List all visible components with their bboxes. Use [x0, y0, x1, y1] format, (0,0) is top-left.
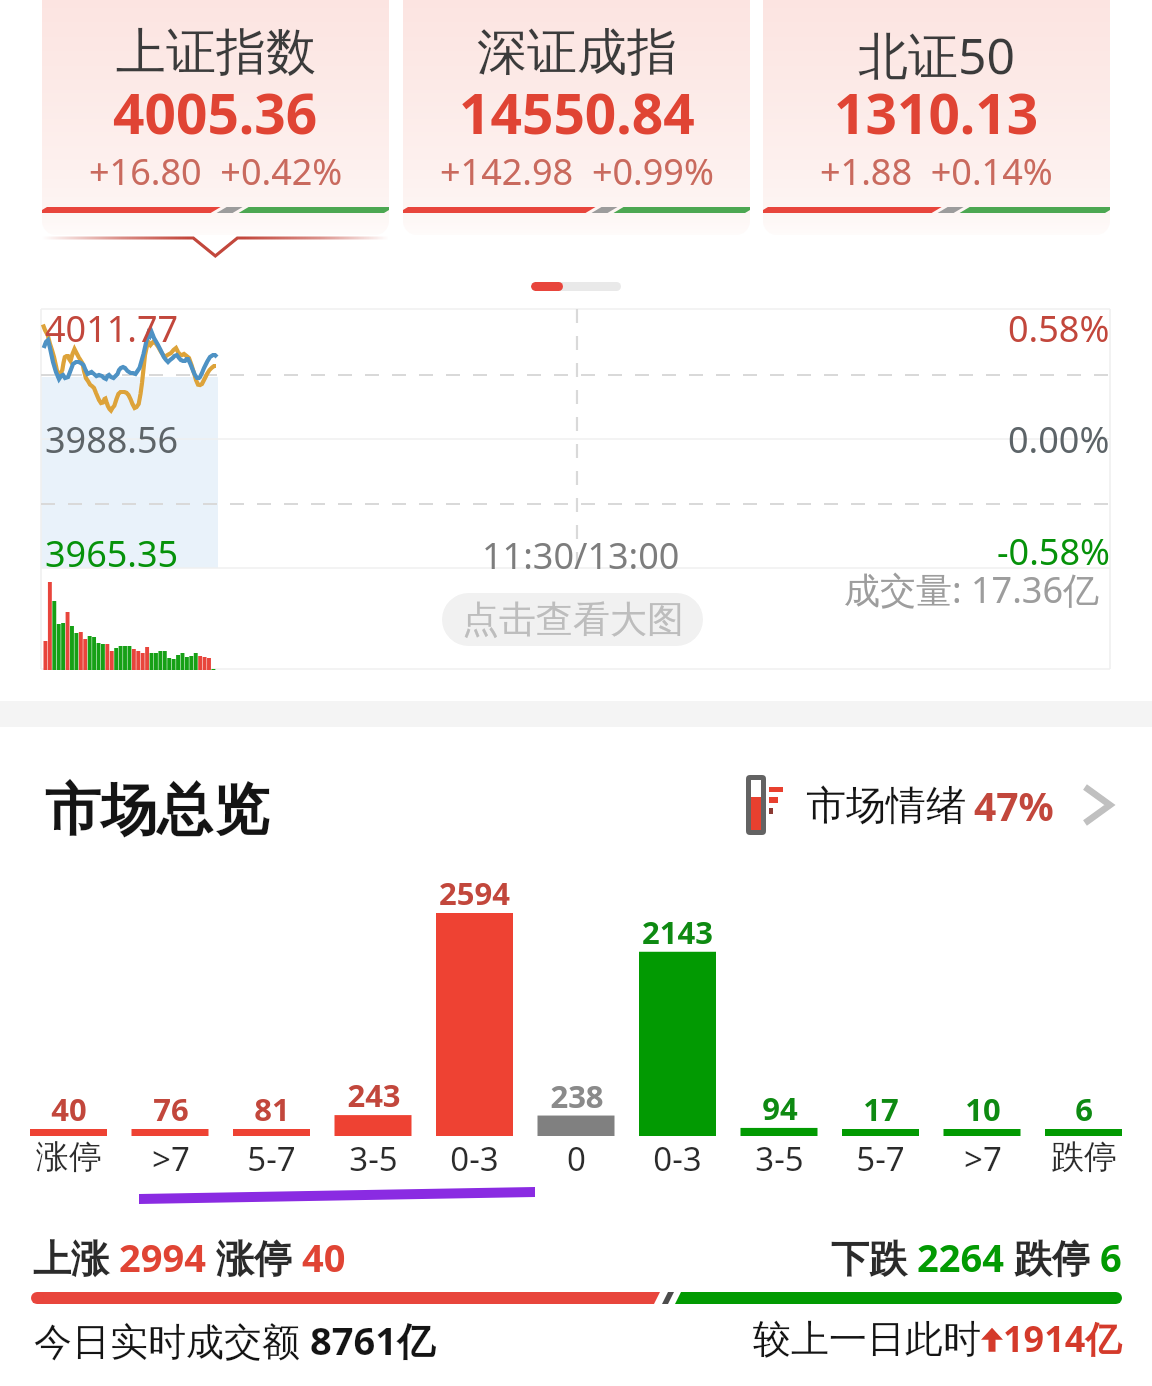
staticText: 3965.35	[45, 529, 179, 578]
staticText: 6	[1075, 1088, 1093, 1130]
staticText: 81	[254, 1088, 290, 1130]
staticText: 1914亿	[1003, 1314, 1122, 1363]
staticText: 76	[153, 1088, 189, 1130]
staticText: 8761亿	[310, 1314, 435, 1366]
button[interactable]: 3-5 94	[729, 880, 830, 1180]
staticText: 40	[51, 1088, 87, 1130]
button[interactable]: 上证指数分时图	[41, 309, 1110, 669]
staticText: 0-3	[653, 1136, 702, 1181]
staticText: 深证成指	[477, 21, 677, 84]
staticText: +142.98 +0.99%	[440, 147, 714, 196]
staticText: 10	[965, 1088, 1001, 1130]
staticText: 点击查看大图	[462, 596, 684, 643]
button[interactable]: 5-7 17	[830, 880, 931, 1180]
staticText: 94	[762, 1087, 798, 1129]
button[interactable]: 0-3 2594	[424, 880, 525, 1180]
staticText: 较上一日此时	[753, 1315, 981, 1363]
staticText: 0	[567, 1136, 586, 1181]
staticText: 上证指数	[116, 21, 316, 84]
staticText: 市场总览	[45, 775, 269, 846]
staticText: 5-7	[856, 1136, 905, 1181]
button[interactable]: 3-5 243	[323, 880, 424, 1180]
staticText: 0.00%	[1008, 415, 1110, 464]
staticText: >7	[152, 1136, 190, 1181]
staticText: 4011.77	[45, 304, 179, 353]
button[interactable]: 涨停 40	[18, 880, 119, 1180]
staticText: 0.58%	[1008, 304, 1110, 353]
staticText: 3-5	[755, 1136, 804, 1181]
staticText: 市场情绪	[806, 780, 966, 830]
button[interactable]: 市场情绪	[746, 771, 1112, 839]
staticText: 成交量: 17.36亿	[844, 565, 1100, 614]
staticText: +16.80 +0.42%	[89, 147, 343, 196]
staticText: 下跌	[831, 1231, 917, 1283]
button[interactable]: 点击查看大图	[442, 593, 703, 646]
button[interactable]: 上证指数	[42, 0, 389, 235]
staticText: 跌停	[1051, 1136, 1117, 1178]
staticText: 3988.56	[45, 415, 179, 464]
button[interactable]: >7 76	[120, 880, 221, 1180]
staticText: 今日实时成交额	[34, 1314, 310, 1366]
staticText: 5-7	[247, 1136, 296, 1181]
staticText: 1310.13	[834, 75, 1039, 150]
staticText: 2594	[439, 872, 510, 914]
staticText: 0-3	[450, 1136, 499, 1181]
staticText: 238	[550, 1075, 604, 1117]
staticText: >7	[964, 1136, 1002, 1181]
staticText: 2994	[119, 1231, 206, 1283]
button[interactable]: 深证成指	[403, 0, 750, 235]
button[interactable]: 5-7 81	[221, 880, 322, 1180]
button[interactable]: 指数分页指示器	[531, 282, 621, 291]
staticText: 涨停	[36, 1136, 102, 1178]
staticText: 6	[1100, 1231, 1122, 1283]
staticText: 上涨	[33, 1231, 119, 1283]
staticText: 北证50	[858, 21, 1016, 89]
staticText: 11:30/13:00	[482, 531, 680, 580]
staticText: 4005.36	[113, 75, 318, 150]
button[interactable]: >7 10	[932, 880, 1033, 1180]
staticText: 17	[863, 1088, 899, 1130]
staticText: 14550.84	[459, 75, 695, 150]
button[interactable]: 北证50	[763, 0, 1110, 235]
staticText: 47%	[974, 779, 1054, 832]
staticText: 40	[302, 1231, 346, 1283]
other: 查看市场情绪	[1084, 785, 1112, 825]
button[interactable]: 跌停 6	[1033, 880, 1134, 1180]
staticText: 跌停	[1004, 1231, 1100, 1283]
staticText: 3-5	[349, 1136, 398, 1181]
staticText: 243	[347, 1074, 401, 1116]
staticText: -0.58%	[997, 527, 1110, 576]
staticText: 涨停	[206, 1231, 302, 1283]
staticText: +1.88 +0.14%	[820, 147, 1053, 196]
button[interactable]: 0 238	[526, 880, 627, 1180]
staticText: 2264	[917, 1231, 1004, 1283]
button[interactable]: 0-3 2143	[627, 880, 728, 1180]
staticText: 2143	[642, 911, 713, 953]
